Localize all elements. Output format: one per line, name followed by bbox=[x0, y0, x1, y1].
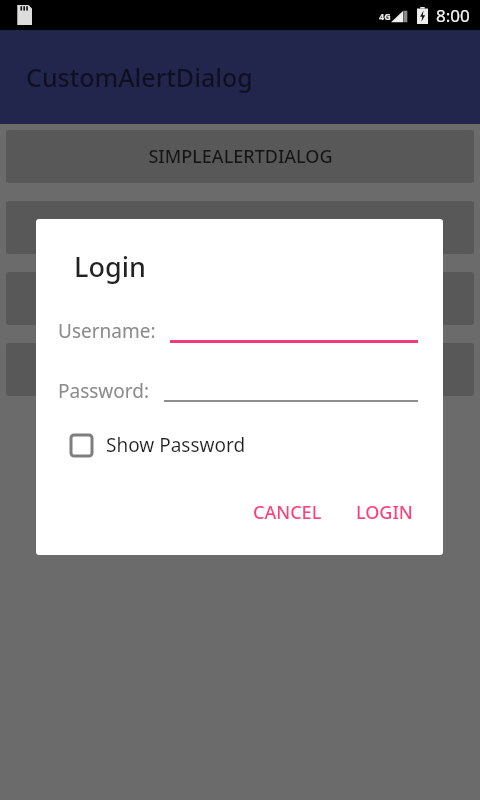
button[interactable]: Show Password bbox=[69, 432, 246, 458]
button[interactable]: LOGIN bbox=[344, 492, 425, 533]
staticText: CANCEL bbox=[253, 500, 322, 525]
staticText: LOGIN bbox=[356, 500, 413, 525]
button[interactable]: Dialog option bbox=[6, 343, 474, 396]
staticText: SIMPLEALERTDIALOG bbox=[148, 144, 333, 169]
staticText: Login bbox=[74, 248, 146, 285]
staticText: Username: bbox=[58, 318, 156, 344]
staticText: CustomAlertDialog bbox=[26, 60, 253, 94]
button[interactable]: Dialog option bbox=[6, 201, 474, 254]
button[interactable]: Dialog option bbox=[6, 272, 474, 325]
staticText: 4G bbox=[379, 10, 391, 22]
button[interactable]: CANCEL bbox=[241, 492, 334, 533]
button[interactable]: SIMPLEALERTDIALOG bbox=[6, 130, 474, 183]
staticText: Show Password bbox=[106, 432, 246, 458]
staticText: Password: bbox=[58, 378, 150, 404]
staticText: 8:00 bbox=[436, 4, 470, 27]
